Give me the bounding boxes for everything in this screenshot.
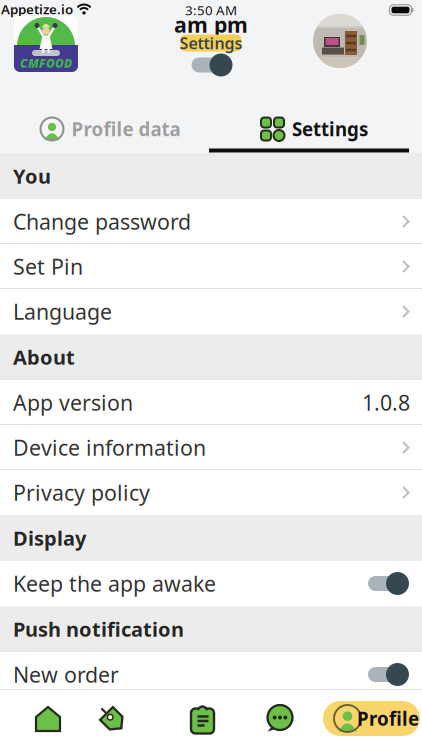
- staticText: Profile data: [71, 117, 180, 141]
- staticText: You: [13, 163, 51, 189]
- button[interactable]: Privacy policy: [0, 470, 422, 515]
- staticText: Change password: [13, 207, 191, 236]
- button[interactable]: Keep the app awake: [0, 561, 422, 606]
- button[interactable]: Set Pin: [0, 244, 422, 289]
- staticText: Appetize.io: [1, 0, 73, 18]
- button[interactable]: Device information: [0, 425, 422, 470]
- staticText: CMFOOD: [20, 55, 72, 71]
- staticText: Profile: [357, 706, 419, 731]
- button[interactable]: Change password: [0, 199, 422, 244]
- button[interactable]: Settings: [179, 34, 243, 51]
- staticText: Settings: [179, 32, 242, 54]
- button[interactable]: Language: [0, 289, 422, 334]
- button[interactable]: Home: [34, 705, 62, 733]
- staticText: Display: [13, 525, 86, 551]
- staticText: New order: [13, 660, 119, 689]
- staticText: 1.0.8: [362, 388, 410, 417]
- button[interactable]: Products: [99, 706, 125, 732]
- staticText: Privacy policy: [13, 478, 150, 507]
- staticText: About: [13, 344, 75, 370]
- staticText: Settings: [292, 117, 368, 141]
- staticText: Push notification: [13, 616, 184, 642]
- staticText: Language: [13, 297, 112, 326]
- button[interactable]: Profile data: [4, 108, 215, 150]
- button[interactable]: App version: [0, 380, 422, 425]
- button[interactable]: Profile photo: [313, 14, 367, 68]
- button[interactable]: Settings: [208, 108, 419, 150]
- staticText: Device information: [13, 433, 206, 462]
- button[interactable]: Profile: [323, 701, 420, 736]
- staticText: Set Pin: [13, 252, 83, 281]
- button[interactable]: New order: [0, 652, 422, 697]
- staticText: 3:50 AM: [185, 1, 237, 19]
- staticText: App version: [13, 388, 133, 417]
- button[interactable]: Orders: [189, 703, 217, 734]
- button[interactable]: Settings toggle: [190, 53, 233, 77]
- button[interactable]: Chat: [265, 704, 295, 734]
- staticText: am pm: [174, 10, 248, 39]
- staticText: Keep the app awake: [13, 569, 216, 598]
